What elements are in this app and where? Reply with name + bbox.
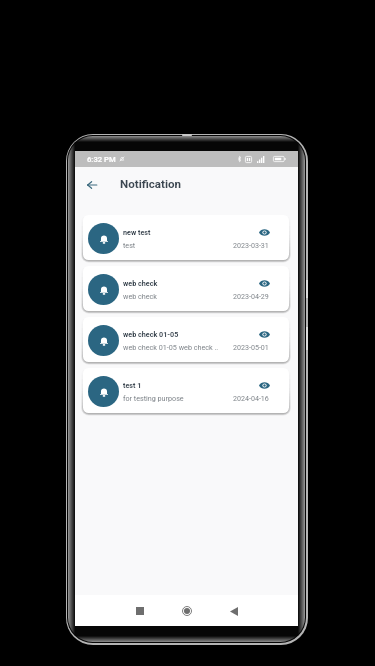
staticText: Notification (120, 177, 182, 191)
staticText: web check 01-05 web check .. (123, 343, 231, 351)
staticText: 2024-04-16 (233, 394, 278, 402)
button[interactable]: Back (220, 597, 248, 625)
button[interactable]: web check (83, 266, 289, 311)
button[interactable]: Back (82, 175, 102, 195)
staticText: web check (123, 292, 231, 300)
staticText: new test (123, 228, 231, 236)
button[interactable]: View (254, 274, 275, 292)
staticText: for testing purpose (123, 394, 231, 402)
button[interactable]: Home (173, 597, 201, 625)
button[interactable]: web check 01-05 (83, 317, 289, 362)
staticText: 2023-05-01 (233, 343, 278, 351)
staticText: 2023-04-29 (233, 292, 278, 300)
staticText: 6:32 PM (87, 155, 116, 164)
staticText: web check 01-05 (123, 330, 231, 338)
button[interactable]: View (254, 223, 275, 241)
button[interactable]: test 1 (83, 368, 289, 413)
staticText: test 1 (123, 381, 231, 389)
staticText: web check (123, 279, 231, 287)
button[interactable]: View (254, 325, 275, 343)
staticText: 2023-03-31 (233, 241, 278, 249)
button[interactable]: new test (83, 215, 289, 260)
button[interactable]: View (254, 376, 275, 394)
button[interactable]: Recent apps (126, 597, 154, 625)
staticText: test (123, 241, 231, 249)
